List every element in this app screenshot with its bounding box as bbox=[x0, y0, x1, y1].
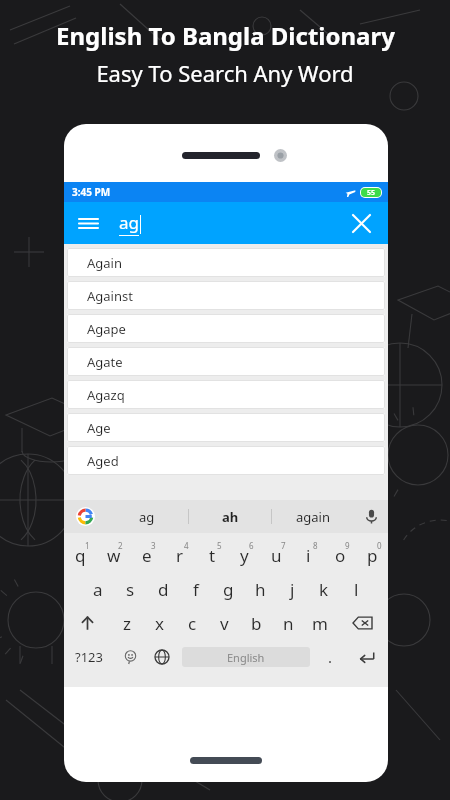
staticText: 9 bbox=[345, 540, 350, 551]
button[interactable]: q bbox=[64, 538, 97, 572]
staticText: t bbox=[209, 544, 216, 567]
staticText: g bbox=[223, 578, 234, 601]
button[interactable]: o bbox=[324, 538, 356, 572]
staticText: . bbox=[328, 647, 333, 667]
button[interactable]: Backspace bbox=[336, 606, 388, 640]
staticText: 0 bbox=[377, 540, 382, 551]
staticText: ag bbox=[119, 211, 139, 234]
staticText: y bbox=[240, 544, 249, 567]
button[interactable]: Voice input bbox=[354, 500, 388, 533]
button[interactable]: again bbox=[272, 500, 354, 533]
button[interactable]: Clear bbox=[346, 208, 376, 238]
button[interactable]: r bbox=[163, 538, 196, 572]
button[interactable]: k bbox=[308, 572, 340, 606]
button[interactable]: a bbox=[81, 572, 114, 606]
button[interactable]: c bbox=[176, 606, 208, 640]
staticText: a bbox=[93, 578, 103, 601]
button[interactable]: y bbox=[228, 538, 260, 572]
button[interactable]: b bbox=[240, 606, 272, 640]
staticText: English bbox=[227, 650, 265, 665]
button[interactable]: d bbox=[147, 572, 180, 606]
button[interactable]: h bbox=[244, 572, 276, 606]
button[interactable]: Against bbox=[67, 281, 385, 310]
button[interactable]: j bbox=[276, 572, 308, 606]
staticText: Against bbox=[87, 287, 133, 305]
button[interactable]: Again bbox=[67, 248, 385, 277]
staticText: c bbox=[188, 612, 197, 635]
button[interactable]: n bbox=[272, 606, 304, 640]
button[interactable]: . bbox=[314, 640, 346, 674]
staticText: again bbox=[296, 508, 330, 526]
staticText: n bbox=[283, 612, 294, 635]
button[interactable]: w bbox=[97, 538, 130, 572]
button[interactable]: ah bbox=[189, 500, 271, 533]
button[interactable]: Age bbox=[67, 413, 385, 442]
button[interactable]: Change language bbox=[146, 640, 178, 674]
button[interactable]: s bbox=[114, 572, 147, 606]
button[interactable]: ?123 bbox=[64, 640, 114, 674]
button[interactable]: Menu bbox=[74, 209, 102, 237]
button[interactable]: ag bbox=[106, 500, 188, 533]
staticText: 3:45 PM bbox=[72, 185, 111, 199]
staticText: ?123 bbox=[75, 648, 103, 666]
staticText: v bbox=[220, 612, 229, 635]
staticText: e bbox=[142, 544, 152, 567]
button[interactable]: f bbox=[180, 572, 212, 606]
button[interactable]: Enter bbox=[346, 640, 388, 674]
button[interactable]: Agape bbox=[67, 314, 385, 343]
staticText: 1 bbox=[85, 540, 90, 551]
staticText: z bbox=[123, 612, 131, 635]
button[interactable]: i bbox=[292, 538, 324, 572]
staticText: ah bbox=[222, 508, 239, 526]
staticText: 7 bbox=[281, 540, 286, 551]
staticText: b bbox=[251, 612, 262, 635]
staticText: l bbox=[354, 578, 359, 601]
staticText: s bbox=[126, 578, 135, 601]
staticText: q bbox=[75, 544, 86, 567]
staticText: k bbox=[319, 578, 329, 601]
staticText: English To Bangla Dictionary bbox=[56, 19, 395, 52]
button[interactable]: English bbox=[182, 647, 310, 667]
button[interactable]: Agazq bbox=[67, 380, 385, 409]
button[interactable]: Aged bbox=[67, 446, 385, 475]
staticText: o bbox=[335, 544, 346, 567]
staticText: i bbox=[306, 544, 311, 567]
staticText: p bbox=[367, 544, 378, 567]
staticText: Age bbox=[87, 419, 111, 437]
staticText: 8 bbox=[313, 540, 318, 551]
button[interactable]: Google bbox=[64, 500, 106, 533]
staticText: h bbox=[255, 578, 266, 601]
staticText: m bbox=[312, 612, 328, 635]
staticText: f bbox=[193, 578, 199, 601]
staticText: r bbox=[176, 544, 184, 567]
staticText: d bbox=[158, 578, 169, 601]
staticText: Aged bbox=[87, 452, 119, 470]
staticText: 6 bbox=[249, 540, 254, 551]
staticText: 5 bbox=[217, 540, 222, 551]
staticText: Agape bbox=[87, 320, 126, 338]
staticText: Agazq bbox=[87, 386, 125, 404]
staticText: Again bbox=[87, 254, 122, 272]
button[interactable]: g bbox=[212, 572, 244, 606]
button[interactable]: l bbox=[340, 572, 372, 606]
button[interactable]: p bbox=[356, 538, 388, 572]
staticText: 3 bbox=[151, 540, 156, 551]
staticText: 55 bbox=[367, 188, 376, 197]
button[interactable]: m bbox=[304, 606, 336, 640]
button[interactable]: Shift bbox=[64, 606, 110, 640]
staticText: Agate bbox=[87, 353, 123, 371]
button[interactable]: Agate bbox=[67, 347, 385, 376]
staticText: j bbox=[290, 578, 295, 601]
button[interactable]: x bbox=[143, 606, 176, 640]
button[interactable]: v bbox=[208, 606, 240, 640]
button[interactable]: Emoji bbox=[114, 640, 146, 674]
button[interactable]: t bbox=[196, 538, 228, 572]
staticText: 2 bbox=[118, 540, 123, 551]
staticText: ag bbox=[139, 508, 155, 526]
staticText: u bbox=[271, 544, 282, 567]
staticText: Easy To Search Any Word bbox=[96, 58, 354, 88]
button[interactable]: z bbox=[110, 606, 143, 640]
staticText: w bbox=[107, 544, 121, 567]
button[interactable]: u bbox=[260, 538, 292, 572]
button[interactable]: e bbox=[130, 538, 163, 572]
